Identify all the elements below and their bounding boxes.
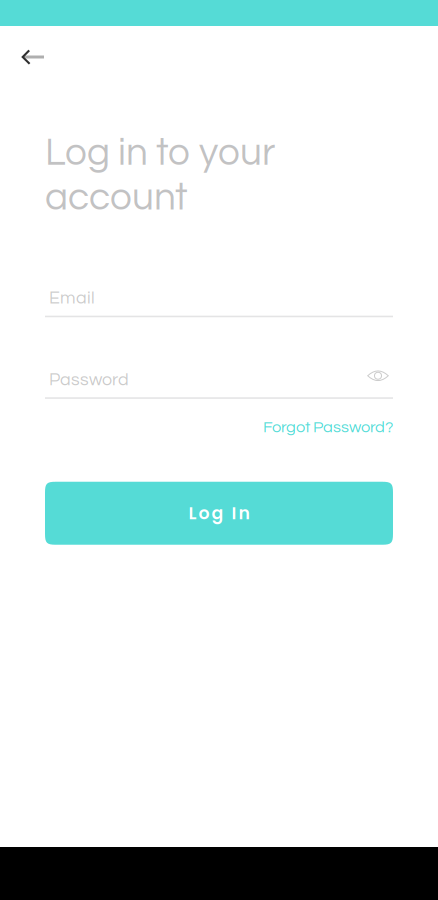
staticText: Email — [49, 289, 95, 307]
staticText: Forgot Password? — [263, 419, 393, 436]
button[interactable]: Log In — [45, 482, 393, 545]
staticText: Log in to your account — [45, 133, 275, 218]
button[interactable]: Forgot Password? — [263, 415, 393, 440]
staticText: Log In — [188, 501, 249, 525]
staticText: Password — [49, 371, 129, 389]
button[interactable]: Show password — [363, 368, 393, 392]
button[interactable]: Back — [12, 35, 56, 79]
